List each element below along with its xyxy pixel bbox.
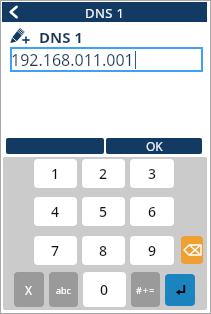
button[interactable]: 192.168.011.001 — [10, 47, 203, 72]
button[interactable]: Back — [2, 2, 25, 22]
staticText: 1 — [51, 164, 60, 183]
staticText: #+= — [136, 284, 156, 296]
button[interactable]: 9 — [130, 236, 174, 265]
button[interactable]: 1 — [34, 159, 77, 188]
button[interactable]: abc — [49, 272, 78, 307]
button[interactable]: 3 — [130, 159, 174, 188]
staticText: 5 — [99, 202, 108, 221]
button[interactable]: X — [14, 272, 44, 307]
button[interactable]: 7 — [34, 236, 77, 265]
staticText: 9 — [148, 241, 157, 260]
staticText: 6 — [148, 202, 157, 221]
button[interactable]: 0 — [83, 272, 126, 307]
button[interactable]: Backspace — [181, 236, 203, 264]
button[interactable]: Cancel — [6, 138, 104, 154]
staticText: DNS 1 — [85, 4, 125, 22]
staticText: abc — [56, 284, 71, 296]
staticText: 8 — [99, 241, 108, 260]
button[interactable]: 5 — [82, 197, 125, 226]
button[interactable]: 4 — [34, 197, 77, 226]
button[interactable]: Enter — [165, 274, 195, 306]
button[interactable]: 8 — [82, 236, 125, 265]
staticText: 2 — [99, 164, 108, 183]
staticText: DNS 1 — [39, 27, 83, 47]
button[interactable]: 2 — [82, 159, 125, 188]
staticText: 192.168.011.001 — [11, 49, 134, 71]
staticText: 3 — [148, 164, 157, 183]
staticText: X — [25, 282, 33, 298]
staticText: 7 — [51, 241, 60, 260]
staticText: 4 — [51, 202, 60, 221]
button[interactable]: #+= — [131, 272, 160, 307]
staticText: OK — [146, 138, 163, 154]
other: Edit — [10, 27, 25, 43]
staticText: 0 — [100, 280, 109, 299]
button[interactable]: OK — [106, 138, 202, 154]
button[interactable]: 6 — [130, 197, 174, 226]
